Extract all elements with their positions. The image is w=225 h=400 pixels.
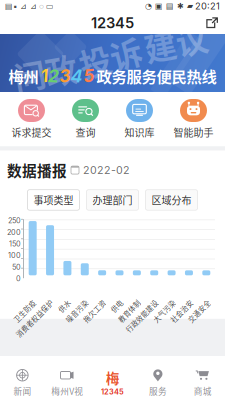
staticText: 服务 <box>149 385 167 397</box>
button[interactable]: Open in browser <box>199 12 225 33</box>
staticText: ▤▪ ⊿ ⊿ ◌ ▭ <box>5 1 54 11</box>
staticText: 1 <box>41 65 48 86</box>
button[interactable]: 新闻 <box>0 367 45 399</box>
staticText: 12345 <box>91 14 134 32</box>
button[interactable]: 事项类型 <box>27 190 79 210</box>
staticText: 交通安全 <box>188 312 216 322</box>
staticText: 商城 <box>194 385 212 397</box>
staticText: 3 <box>59 65 70 86</box>
staticText: 新闻 <box>13 385 31 397</box>
staticText: 20:21 <box>195 0 220 12</box>
staticText: 投诉 <box>78 34 142 80</box>
button[interactable]: 查询 <box>58 98 112 140</box>
staticText: 4 <box>71 65 83 86</box>
staticText: 拖欠工资 <box>83 312 111 322</box>
button[interactable]: 诉求提交 <box>4 98 58 140</box>
staticText: 2 <box>48 65 59 86</box>
staticText: 知识库 <box>124 125 154 139</box>
staticText: 大气污染 <box>153 312 181 322</box>
staticText: 教育体制 <box>118 312 146 322</box>
staticText: 梅州 <box>8 65 38 87</box>
staticText: 供水 <box>62 312 76 322</box>
staticText: 100 <box>8 251 21 260</box>
staticText: 250 <box>8 216 21 225</box>
staticText: 噪音污染 <box>66 312 94 322</box>
staticText: 5 <box>83 65 94 86</box>
staticText: 梅 <box>106 368 119 387</box>
staticText: 政务服务便民热线 <box>96 65 216 87</box>
staticText: 50 <box>12 263 21 271</box>
staticText: 2022-02 <box>83 164 130 176</box>
staticText: 事项类型 <box>33 193 73 207</box>
staticText: 12345 <box>101 387 124 396</box>
staticText: 消费者权益保护 <box>10 312 59 322</box>
staticText <box>38 73 40 79</box>
button[interactable]: 梅州V视 <box>45 367 90 399</box>
staticText: 卫生防疫 <box>13 312 41 322</box>
staticText: 200 <box>7 228 21 237</box>
staticText: 建议 <box>145 34 209 80</box>
staticText: 区域分布 <box>151 193 191 207</box>
button[interactable]: 服务 <box>135 367 180 399</box>
button[interactable]: 智能助手 <box>166 98 220 140</box>
button[interactable]: 梅 <box>89 368 135 396</box>
staticText: 社会治安 <box>170 312 198 322</box>
staticText: 梅州V视 <box>51 385 83 397</box>
staticText: 供电 <box>114 312 128 322</box>
staticText <box>94 73 96 79</box>
staticText: 诉求提交 <box>11 125 51 139</box>
staticText: ◔ ▣ ▤ ✱ ▰ <box>145 1 193 11</box>
staticText: 150 <box>9 239 21 248</box>
staticText: 0 <box>16 274 21 283</box>
staticText: 数据播报 <box>7 159 67 181</box>
staticText: 问政 <box>11 34 75 80</box>
staticText: 查询 <box>75 125 95 139</box>
staticText: 智能助手 <box>173 125 213 139</box>
button[interactable]: 知识库 <box>112 98 166 140</box>
staticText: 行政效能建设 <box>121 312 163 322</box>
button[interactable]: 商城 <box>180 367 225 399</box>
button[interactable]: 区域分布 <box>145 190 197 210</box>
staticText: 办理部门 <box>92 193 132 207</box>
button[interactable]: 办理部门 <box>86 190 138 210</box>
